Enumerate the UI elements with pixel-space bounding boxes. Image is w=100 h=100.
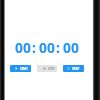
staticText: : [32, 38, 36, 57]
staticText: START [20, 67, 28, 71]
staticText: 00 [39, 38, 55, 57]
button[interactable]: START [10, 65, 31, 72]
staticText: : [56, 38, 60, 57]
button[interactable]: STOP [37, 65, 57, 72]
staticText: STOP [48, 67, 55, 71]
staticText: 00 [15, 38, 31, 57]
staticText: RESET [72, 67, 80, 71]
staticText: 00 [63, 38, 79, 57]
button[interactable]: RESET [63, 65, 84, 72]
